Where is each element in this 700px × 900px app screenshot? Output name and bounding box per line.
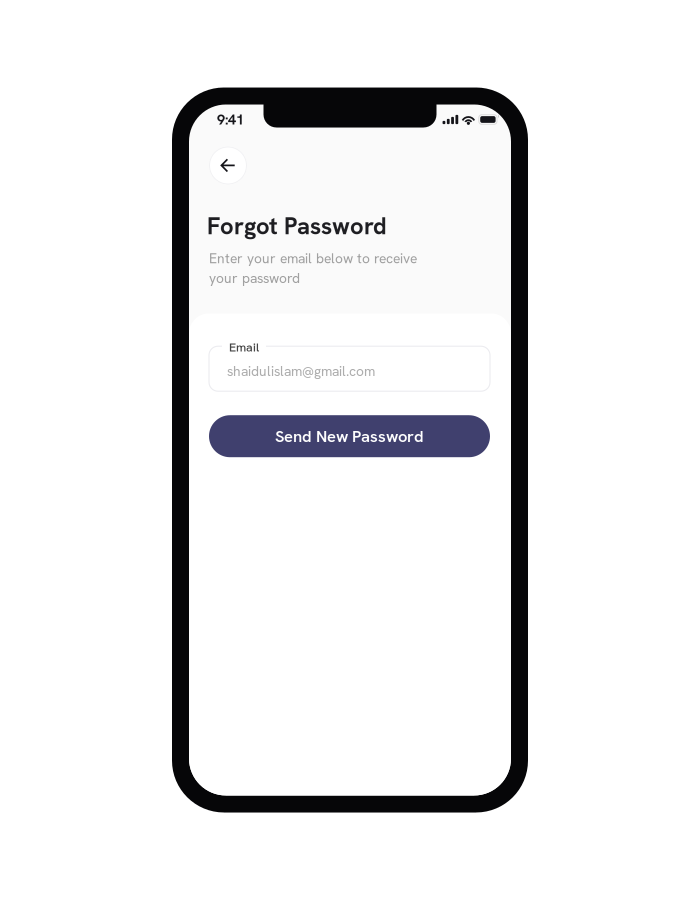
button[interactable]: Send New Password bbox=[209, 415, 490, 457]
staticText: shaidulislam@gmail.com bbox=[227, 362, 375, 380]
staticText: Enter your email below to receive your p… bbox=[209, 249, 417, 287]
staticText: Email bbox=[229, 339, 259, 355]
staticText: Forgot Password bbox=[207, 210, 387, 241]
staticText: Send New Password bbox=[275, 425, 424, 447]
button[interactable]: Back bbox=[209, 146, 247, 184]
staticText: 9:41 bbox=[217, 110, 244, 129]
